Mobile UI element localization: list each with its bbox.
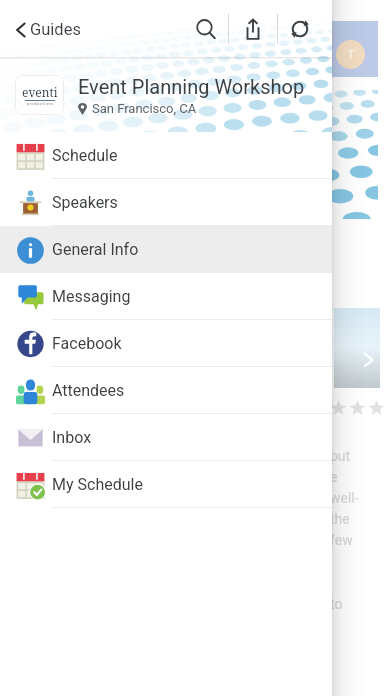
button[interactable]: Inbox <box>0 414 332 461</box>
staticText: My Schedule <box>52 475 143 494</box>
button[interactable]: Schedule <box>0 132 332 179</box>
button[interactable]: Search <box>184 7 228 51</box>
staticText: e <box>330 469 338 485</box>
staticText: Inbox <box>52 428 92 447</box>
staticText: Event Planning Workshop <box>78 75 305 98</box>
button[interactable]: General Info <box>0 226 332 273</box>
button[interactable]: Messaging <box>0 273 332 320</box>
button[interactable]: My Schedule <box>0 461 332 508</box>
button[interactable]: Speakers <box>0 179 332 226</box>
staticText: the <box>330 511 350 527</box>
staticText: Guides <box>30 20 81 39</box>
staticText: put <box>330 448 351 464</box>
staticText: eventi <box>22 84 58 100</box>
staticText: General Info <box>52 240 139 259</box>
staticText: Facebook <box>52 334 122 353</box>
staticText: Attendees <box>52 381 125 400</box>
button[interactable]: Refresh <box>278 7 322 51</box>
button[interactable]: Attendees <box>0 367 332 414</box>
button[interactable]: Facebook <box>0 320 332 367</box>
button[interactable]: Guides <box>14 14 83 45</box>
staticText: productions <box>27 101 54 106</box>
staticText: few <box>330 532 353 548</box>
staticText: Speakers <box>52 193 118 212</box>
staticText: San Francisco, CA <box>92 101 197 116</box>
button[interactable]: Share <box>229 5 277 53</box>
staticText: Messaging <box>52 287 131 306</box>
staticText: Schedule <box>52 146 118 165</box>
staticText: well- <box>330 490 359 506</box>
staticText: T <box>347 47 355 62</box>
staticText: to <box>330 596 343 612</box>
